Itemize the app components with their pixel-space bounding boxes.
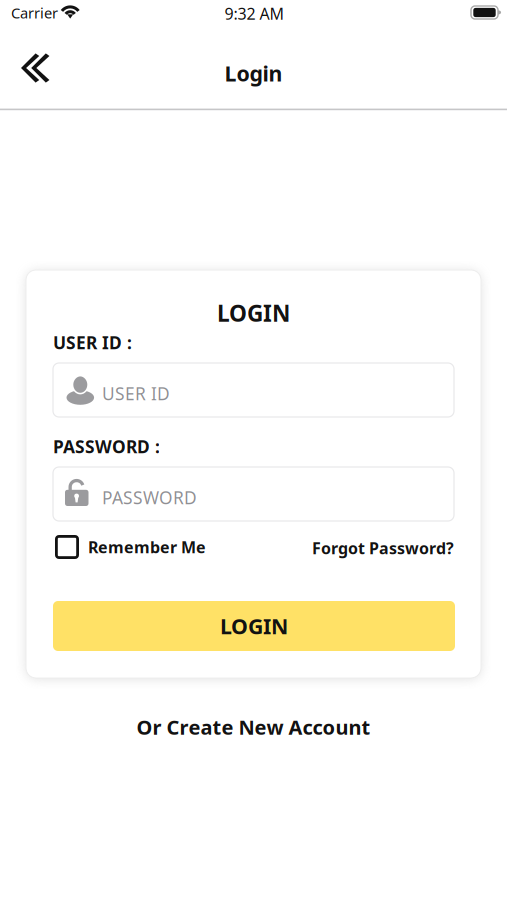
staticText: Forgot Password?	[312, 537, 454, 559]
button[interactable]: Forgot Password?	[274, 534, 454, 562]
staticText: Login	[224, 59, 282, 87]
staticText: PASSWORD :	[53, 435, 160, 458]
staticText: LOGIN	[217, 298, 290, 328]
button[interactable]: Or Create New Account	[0, 713, 507, 741]
button[interactable]: LOGIN	[53, 601, 455, 651]
staticText: USER ID	[102, 382, 170, 405]
button[interactable]: Back	[14, 46, 58, 90]
staticText: LOGIN	[220, 612, 288, 640]
button[interactable]: PASSWORD	[53, 467, 454, 521]
staticText: Remember Me	[88, 536, 206, 558]
staticText: Or Create New Account	[136, 714, 370, 740]
staticText: USER ID :	[53, 331, 132, 354]
staticText: 9:32 AM	[224, 3, 284, 24]
button[interactable]: USER ID	[53, 363, 454, 417]
button[interactable]: Remember Me	[55, 533, 235, 561]
staticText: PASSWORD	[102, 486, 197, 509]
staticText: Carrier	[11, 3, 58, 22]
